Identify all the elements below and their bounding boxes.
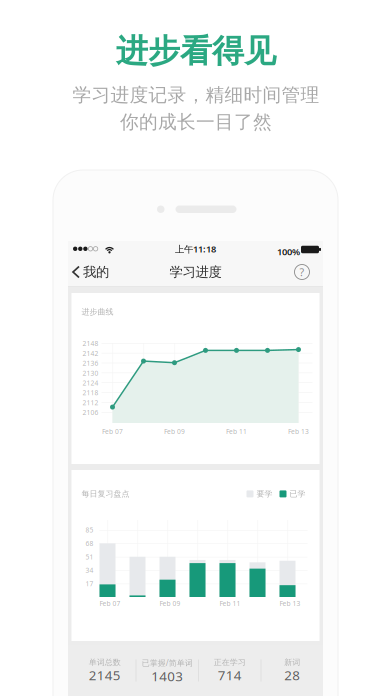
staticText: Feb 09 (164, 427, 185, 436)
staticText: 你的成长一目了然 (120, 110, 272, 133)
staticText: 68 (85, 539, 93, 548)
staticText: Feb 13 (288, 427, 309, 436)
button[interactable]: 新词 (261, 650, 323, 690)
staticText: Feb 11 (226, 427, 247, 436)
staticText: 2118 (82, 388, 98, 397)
staticText: 已掌握/简单词 (142, 657, 193, 668)
staticText: 2112 (82, 398, 98, 407)
staticText: 要学 (256, 489, 272, 499)
staticText: 2130 (82, 369, 98, 377)
button[interactable]: Help (286, 257, 318, 287)
staticText: 28 (284, 666, 300, 684)
button[interactable]: 单词总数 (74, 650, 136, 690)
staticText: Feb 07 (99, 599, 120, 608)
staticText: 2145 (89, 666, 121, 684)
staticText: 1403 (151, 667, 183, 685)
button[interactable]: 我的 (68, 257, 114, 287)
staticText: Feb 09 (159, 599, 180, 608)
staticText: 进步曲线 (81, 307, 113, 317)
staticText: 新词 (284, 657, 300, 667)
staticText: 34 (85, 566, 93, 575)
staticText: 51 (85, 552, 93, 561)
staticText: ? (299, 265, 304, 279)
staticText: 已学 (289, 489, 305, 499)
staticText: 2148 (82, 339, 98, 348)
staticText: 85 (85, 526, 93, 534)
staticText: 学习进度记录，精细时间管理 (72, 83, 319, 106)
staticText: 上午11:18 (175, 243, 216, 255)
staticText: Feb 11 (219, 599, 240, 608)
staticText: 2136 (82, 359, 98, 368)
staticText: 进步看得见 (116, 31, 276, 71)
staticText: 2106 (82, 408, 98, 417)
button[interactable]: 已掌握/简单词 (136, 650, 198, 690)
button[interactable]: 正在学习 (199, 650, 261, 690)
staticText: 100% (277, 245, 300, 258)
staticText: 2142 (82, 349, 98, 358)
staticText: 学习进度 (169, 264, 221, 280)
staticText: 714 (218, 666, 242, 684)
staticText: 每日复习盘点 (81, 489, 129, 499)
staticText: 17 (85, 579, 93, 588)
staticText: 2124 (82, 378, 98, 387)
staticText: Feb 13 (279, 599, 300, 608)
staticText: Feb 07 (102, 427, 123, 436)
staticText: 我的 (83, 264, 109, 280)
staticText: 正在学习 (214, 657, 246, 667)
staticText: 单词总数 (89, 657, 121, 667)
